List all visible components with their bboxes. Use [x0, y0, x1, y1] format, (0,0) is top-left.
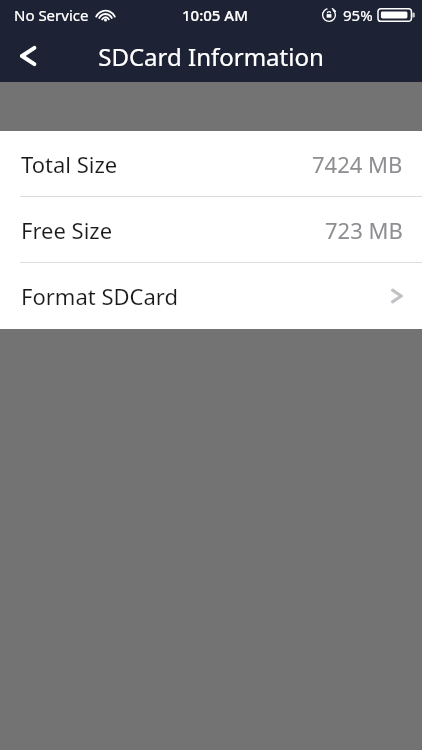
button[interactable]: Free Size	[0, 197, 422, 262]
staticText: 7424 MB	[312, 149, 403, 179]
button[interactable]: Total Size	[0, 131, 422, 196]
staticText: 10:05 AM	[182, 5, 248, 25]
staticText: SDCard Information	[0, 40, 422, 73]
staticText: Total Size	[21, 149, 118, 179]
staticText: 95%	[343, 5, 373, 25]
staticText: Free Size	[21, 215, 113, 245]
button[interactable]: Format SDCard	[0, 263, 422, 329]
staticText: 723 MB	[325, 215, 403, 245]
staticText: Format SDCard	[21, 281, 178, 311]
button[interactable]: Back	[0, 30, 56, 82]
staticText: No Service	[14, 5, 89, 25]
